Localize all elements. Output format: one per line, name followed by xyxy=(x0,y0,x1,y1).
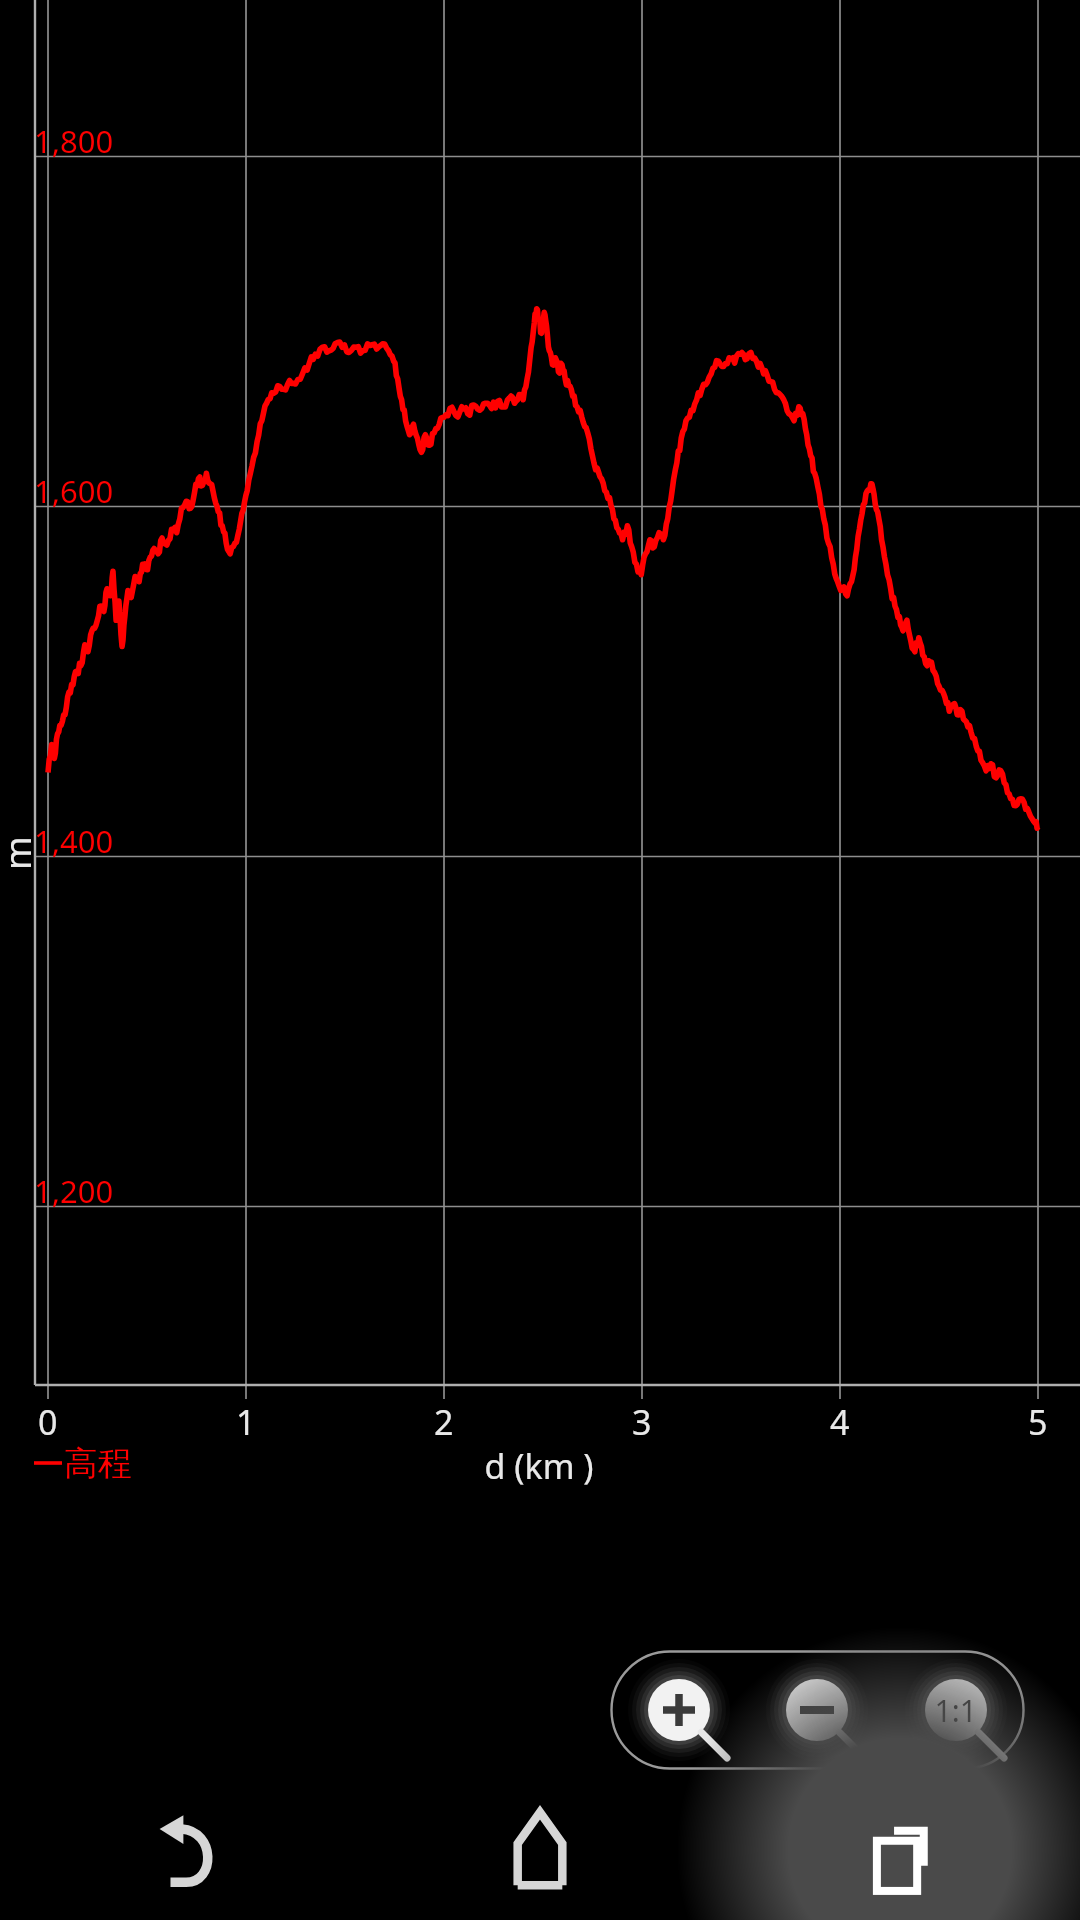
button[interactable]: Recent apps xyxy=(720,1780,1080,1920)
button[interactable]: Zoom out xyxy=(754,1656,880,1764)
button[interactable]: Back xyxy=(0,1780,360,1920)
button[interactable]: Home xyxy=(360,1780,720,1920)
button[interactable]: Zoom in xyxy=(616,1656,742,1764)
button[interactable]: Reset zoom xyxy=(893,1656,1019,1764)
